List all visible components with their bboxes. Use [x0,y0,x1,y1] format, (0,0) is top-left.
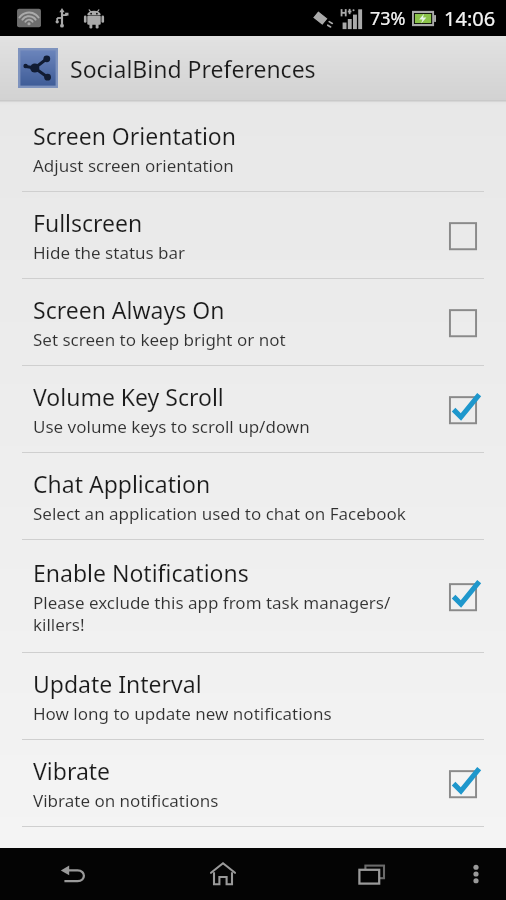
button[interactable]: More options [446,848,506,900]
staticText: Volume Key Scroll [33,381,224,412]
button[interactable]: Back [0,848,148,900]
staticText: Screen Always On [33,294,225,325]
staticText: Use volume keys to scroll up/down [33,415,310,438]
button[interactable]: Recent apps [297,848,446,900]
button[interactable]: Home [148,848,297,900]
button[interactable]: Vibrate, checked [442,762,484,804]
staticText: 14:06 [444,5,496,32]
button[interactable]: Screen Always On [0,279,506,365]
staticText: SocialBind Preferences [70,53,316,84]
staticText: Set screen to keep bright or not [33,328,286,351]
staticText: Select an application used to chat on Fa… [33,502,406,525]
button[interactable]: Fullscreen, not checked [442,214,484,256]
staticText: Fullscreen [33,207,143,238]
button[interactable]: Enable Notifications, checked [442,575,484,617]
staticText: How long to update new notifications [33,702,332,725]
button[interactable]: Volume Key Scroll [0,366,506,452]
staticText: Update Interval [33,668,202,699]
staticText: Screen Orientation [33,120,236,151]
button[interactable]: Vibrate [0,740,506,826]
button[interactable]: Chat Application [0,453,506,539]
button[interactable]: Screen Orientation [0,105,506,191]
button[interactable]: Fullscreen [0,192,506,278]
staticText: Vibrate [33,755,111,786]
staticText: Adjust screen orientation [33,154,234,177]
staticText: Please exclude this app from task manage… [33,591,430,636]
button[interactable]: Update Interval [0,653,506,739]
staticText: Enable Notifications [33,557,249,588]
button[interactable]: Enable Notifications [0,540,506,652]
button[interactable]: Volume Key Scroll, checked [442,388,484,430]
staticText: Vibrate on notifications [33,789,219,812]
staticText: 73% [370,6,406,31]
button[interactable]: Screen Always On, not checked [442,301,484,343]
staticText: Hide the status bar [33,241,186,264]
staticText: Chat Application [33,468,211,499]
